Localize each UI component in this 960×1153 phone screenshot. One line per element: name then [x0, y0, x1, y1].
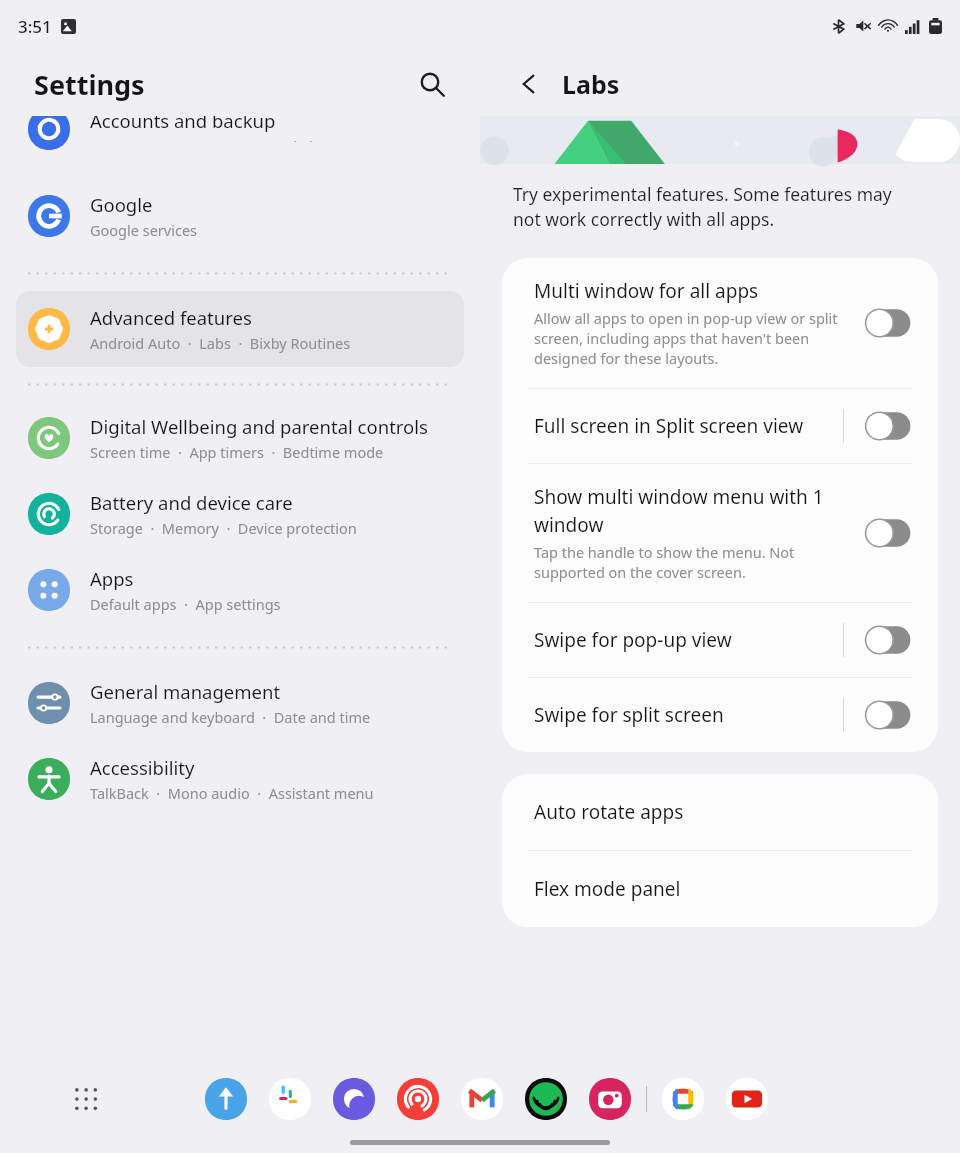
button[interactable]: App — [332, 1077, 376, 1121]
button[interactable]: Apps — [16, 552, 464, 628]
button[interactable]: Google — [16, 178, 464, 254]
staticText: Allow all apps to open in pop-up view or… — [534, 308, 846, 368]
button[interactable]: Digital Wellbeing and parental controls — [16, 400, 464, 476]
staticText: Flex mode panel — [534, 876, 681, 902]
button[interactable]: Toggle off — [860, 518, 916, 548]
button[interactable]: Show multi window menu with 1 window — [502, 464, 938, 602]
staticText: Accessibility — [90, 755, 195, 780]
button[interactable]: Full screen in Split screen view — [502, 389, 938, 463]
button[interactable]: Battery and device care — [16, 476, 464, 552]
staticText: Labs — [562, 67, 620, 101]
button[interactable]: App — [661, 1077, 705, 1121]
staticText: Storage · Memory · Device protection — [90, 518, 357, 538]
button[interactable]: App — [268, 1077, 312, 1121]
staticText: Digital Wellbeing and parental controls — [90, 414, 428, 439]
button[interactable]: Toggle off — [860, 625, 916, 655]
staticText: Multi window for all apps — [534, 278, 759, 304]
staticText: Manage accounts · Smart Switch — [90, 136, 319, 142]
button[interactable]: App — [460, 1077, 504, 1121]
staticText: Tap the handle to show the menu. Not sup… — [534, 542, 846, 582]
button[interactable]: Toggle off — [860, 700, 916, 730]
button[interactable]: Auto rotate apps — [502, 774, 938, 850]
button[interactable]: General management — [16, 665, 464, 741]
staticText: Show multi window menu with 1 window — [534, 484, 846, 538]
staticText: Settings — [34, 66, 145, 103]
button[interactable]: Back — [508, 63, 550, 105]
button[interactable]: Accessibility — [16, 741, 464, 817]
button[interactable]: App — [588, 1077, 632, 1121]
staticText: Google services — [90, 220, 198, 240]
staticText: General management — [90, 679, 281, 704]
button[interactable]: Multi window for all apps — [502, 258, 938, 388]
staticText: Language and keyboard · Date and time — [90, 707, 371, 727]
button[interactable]: App — [204, 1077, 248, 1121]
button[interactable]: App — [725, 1077, 769, 1121]
staticText: Try experimental features. Some features… — [513, 182, 924, 232]
staticText: Battery and device care — [90, 490, 293, 515]
button[interactable]: Search — [410, 62, 454, 106]
button[interactable]: Swipe for pop-up view — [502, 603, 938, 677]
staticText: Android Auto · Labs · Bixby Routines — [90, 333, 351, 353]
button[interactable]: Toggle off — [860, 411, 916, 441]
button[interactable]: Toggle off — [860, 308, 916, 338]
button[interactable]: App — [524, 1077, 568, 1121]
button[interactable]: All apps — [66, 1079, 106, 1119]
staticText: 3:51 — [18, 15, 52, 38]
staticText: Swipe for pop-up view — [534, 627, 732, 653]
staticText: Default apps · App settings — [90, 594, 281, 614]
staticText: Swipe for split screen — [534, 702, 724, 728]
button[interactable]: Flex mode panel — [502, 851, 938, 927]
staticText: Google — [90, 192, 153, 217]
button[interactable]: App — [396, 1077, 440, 1121]
button[interactable]: Accounts and backup — [16, 116, 464, 156]
staticText: Full screen in Split screen view — [534, 413, 804, 439]
staticText: Accounts and backup — [90, 116, 276, 133]
staticText: Apps — [90, 566, 134, 591]
staticText: Auto rotate apps — [534, 799, 684, 825]
staticText: Screen time · App timers · Bedtime mode — [90, 442, 384, 462]
staticText: TalkBack · Mono audio · Assistant menu — [90, 783, 374, 803]
button[interactable]: Advanced features — [16, 291, 464, 367]
staticText: Advanced features — [90, 305, 252, 330]
button[interactable]: Swipe for split screen — [502, 678, 938, 752]
